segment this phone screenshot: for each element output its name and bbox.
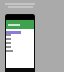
button[interactable] — [6, 20, 34, 29]
